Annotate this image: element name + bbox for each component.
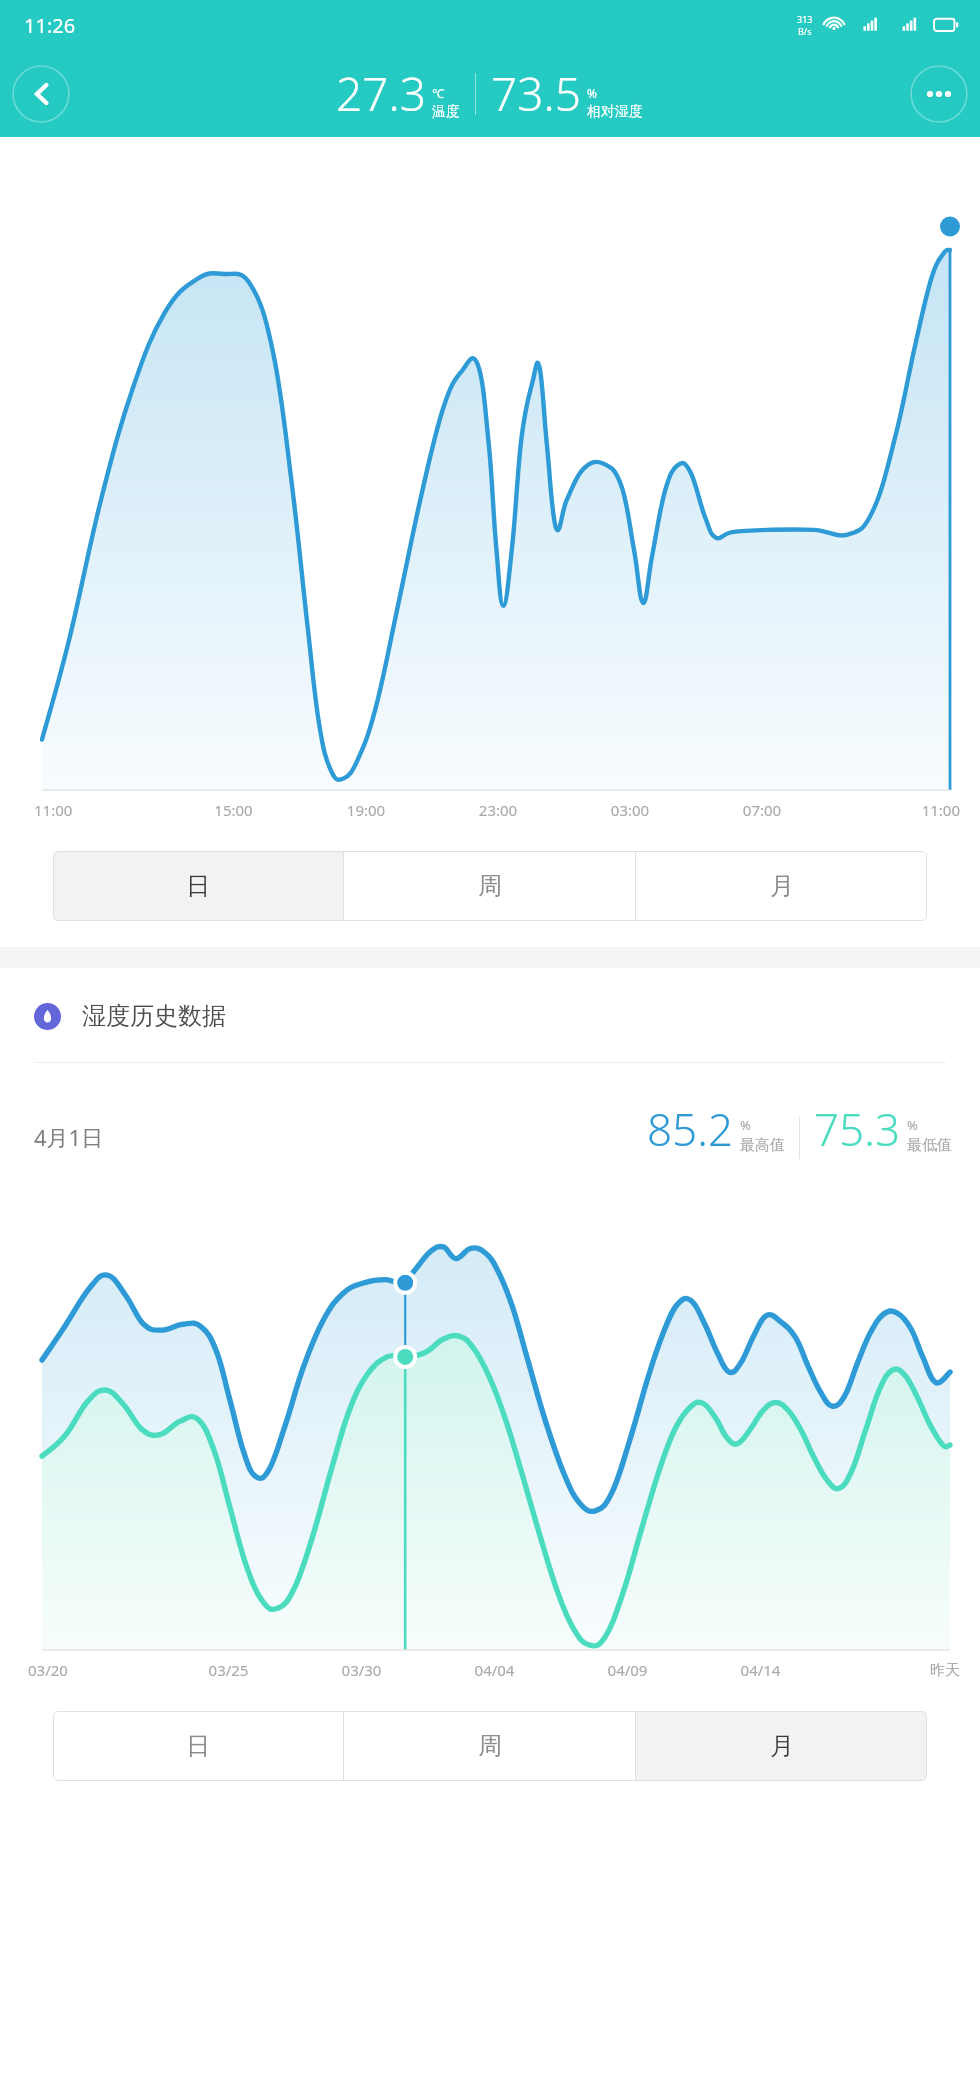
- staticText: 85.2: [647, 1099, 734, 1159]
- staticText: 湿度历史数据: [82, 1001, 226, 1031]
- staticText: 27.3: [336, 62, 427, 125]
- button[interactable]: 周: [344, 851, 635, 921]
- staticText: 相对湿度: [587, 103, 643, 121]
- staticText: 最高值: [740, 1136, 785, 1155]
- staticText: 04/09: [561, 1660, 694, 1680]
- staticText: ℃: [432, 85, 444, 101]
- staticText: 4月1日: [34, 1122, 104, 1152]
- staticText: 11:00: [34, 800, 167, 820]
- staticText: 03/30: [295, 1660, 428, 1680]
- staticText: 03/25: [162, 1660, 295, 1680]
- button[interactable]: 月: [636, 1711, 927, 1781]
- staticText: 04/04: [428, 1660, 561, 1680]
- staticText: 11:00: [828, 800, 960, 820]
- staticText: 周: [478, 871, 502, 901]
- staticText: 23:00: [432, 800, 564, 820]
- staticText: 温度: [432, 103, 460, 121]
- staticText: 11:26: [24, 12, 76, 39]
- staticText: 昨天: [827, 1661, 960, 1680]
- staticText: 04/14: [694, 1660, 827, 1680]
- button[interactable]: Back: [12, 65, 70, 123]
- staticText: 日: [186, 871, 210, 901]
- staticText: 月: [770, 1731, 794, 1761]
- staticText: 07:00: [696, 800, 828, 820]
- button[interactable]: 日: [53, 1711, 343, 1781]
- staticText: 313: [797, 13, 813, 25]
- button[interactable]: 湿度历史数据: [34, 996, 980, 1036]
- staticText: %: [740, 1116, 751, 1134]
- staticText: 03:00: [564, 800, 696, 820]
- button[interactable]: 周: [344, 1711, 635, 1781]
- staticText: 19:00: [300, 800, 432, 820]
- staticText: 15:00: [167, 800, 300, 820]
- staticText: 最低值: [907, 1136, 952, 1155]
- staticText: 75.3: [814, 1099, 901, 1159]
- staticText: %: [587, 85, 597, 101]
- staticText: 月: [770, 871, 794, 901]
- button[interactable]: 日: [53, 851, 343, 921]
- staticText: B/s: [798, 25, 812, 37]
- button[interactable]: More options: [910, 65, 968, 123]
- staticText: 03/20: [28, 1660, 162, 1680]
- staticText: 73.5: [491, 62, 582, 125]
- staticText: %: [907, 1116, 918, 1134]
- button[interactable]: 月: [636, 851, 927, 921]
- staticText: 日: [186, 1731, 210, 1761]
- staticText: 周: [478, 1731, 502, 1761]
